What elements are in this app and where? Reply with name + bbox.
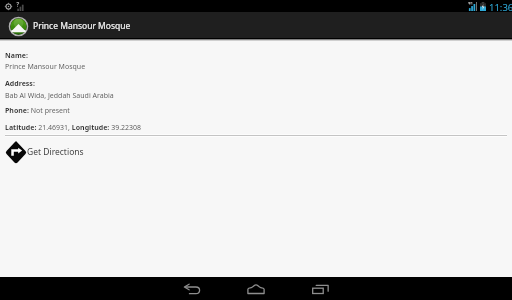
button[interactable]: Home bbox=[226, 277, 286, 300]
staticText: Phone: Not present bbox=[5, 106, 70, 116]
staticText: Prince Mansour Mosque bbox=[5, 62, 86, 72]
staticText: Name: bbox=[5, 51, 28, 61]
staticText: Bab Al Wida, Jeddah Saudi Arabia bbox=[5, 91, 114, 101]
staticText: 11:36 bbox=[489, 1, 512, 13]
button[interactable]: Recent apps bbox=[290, 277, 350, 300]
staticText: Get Directions bbox=[27, 146, 84, 158]
staticText: Latitude: 21.46931, Longitude: 39.22308 bbox=[5, 123, 142, 133]
button[interactable]: Prince Mansour Mosque bbox=[0, 12, 512, 38]
button[interactable]: Get Directions bbox=[0, 137, 512, 165]
staticText: Prince Mansour Mosque bbox=[33, 20, 131, 32]
staticText: Address: bbox=[5, 79, 35, 89]
button[interactable]: Back bbox=[162, 277, 222, 300]
